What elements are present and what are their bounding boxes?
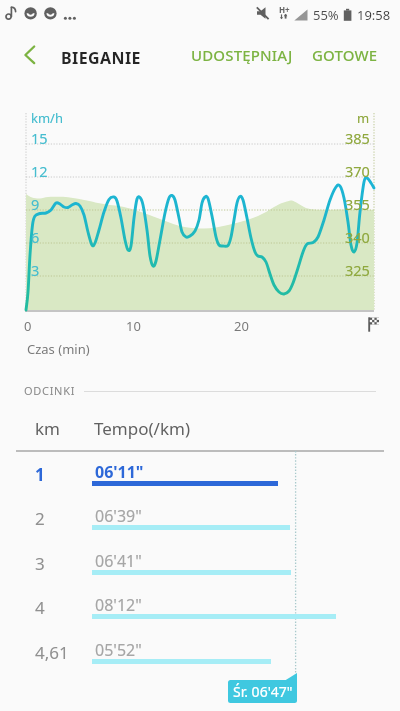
staticText: 9 (31, 194, 40, 214)
button[interactable]: 4,61 (0, 634, 400, 678)
staticText: UDOSTĘPNIAJ (191, 45, 293, 65)
staticText: 385 (345, 128, 370, 148)
staticText: 06'41" (95, 550, 142, 572)
staticText: 0 (24, 317, 32, 335)
staticText: 06'11" (95, 461, 144, 483)
button[interactable]: GOTOWE (307, 33, 383, 76)
staticText: 19:58 (357, 6, 391, 24)
staticText: m (357, 109, 370, 127)
staticText: Tempo(/km) (94, 417, 190, 440)
staticText: 06'39" (95, 505, 142, 527)
staticText: 05'52" (95, 639, 142, 661)
staticText: 15 (31, 128, 48, 148)
staticText: 1 (35, 463, 45, 486)
staticText: 08'12" (95, 594, 142, 616)
staticText: ODCINKI (24, 383, 76, 398)
staticText: 20 (234, 317, 249, 335)
staticText: km (35, 417, 60, 440)
button[interactable]: Śr. 06'47" (228, 673, 297, 704)
button[interactable]: 2 (0, 500, 400, 544)
staticText: 4 (35, 596, 45, 619)
staticText: 3 (31, 260, 40, 280)
button[interactable]: Wstecz (8, 35, 48, 75)
button[interactable]: 3 (0, 545, 400, 589)
staticText: 340 (345, 227, 370, 247)
staticText: 355 (345, 194, 370, 214)
staticText: km/h (31, 109, 63, 127)
staticText: 2 (35, 507, 45, 530)
staticText: 55% (313, 6, 339, 24)
staticText: GOTOWE (312, 45, 378, 65)
staticText: Śr. 06'47" (233, 682, 293, 701)
staticText: 12 (31, 161, 48, 181)
staticText: 3 (35, 552, 45, 575)
staticText: Czas (min) (27, 340, 90, 358)
button[interactable]: 4 (0, 589, 400, 633)
staticText: BIEGANIE (61, 47, 141, 69)
staticText: 370 (345, 161, 370, 181)
staticText: 325 (345, 260, 370, 280)
staticText: 10 (126, 317, 141, 335)
staticText: 4,61 (35, 641, 69, 664)
staticText: 6 (31, 227, 40, 247)
button[interactable]: 1 (0, 456, 400, 500)
staticText: H+ (279, 4, 290, 15)
button[interactable]: UDOSTĘPNIAJ (184, 33, 300, 76)
